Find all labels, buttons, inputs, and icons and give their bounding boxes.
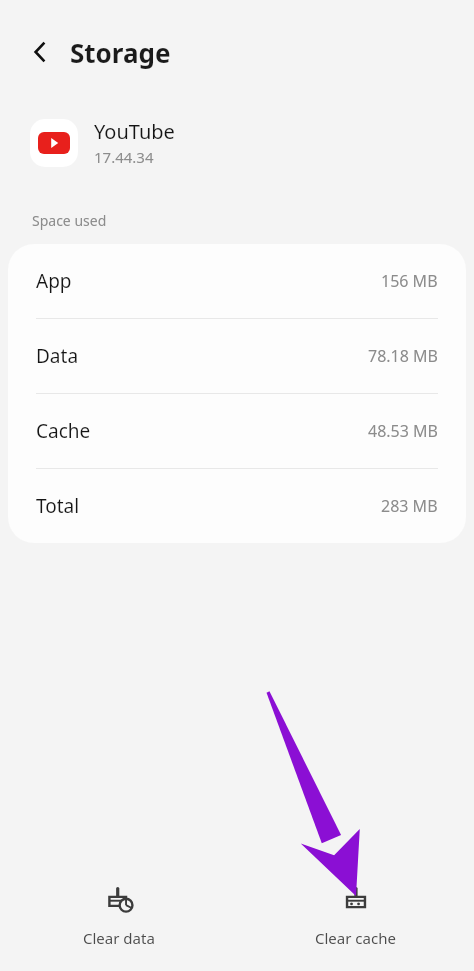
staticText: YouTube [94,118,175,145]
button[interactable]: Data [8,319,466,393]
staticText: Clear data [83,928,155,948]
staticText: Storage [70,35,171,70]
button[interactable]: Back [18,30,62,74]
staticText: Cache [36,418,91,444]
button[interactable]: Cache [8,394,466,468]
other: Clear cache [340,886,372,918]
staticText: 78.18 MB [368,345,438,367]
button[interactable]: App [8,244,466,318]
button[interactable]: Clear data [0,878,237,956]
staticText: 17.44.34 [94,147,154,167]
button[interactable]: Total [8,469,466,543]
button[interactable]: Clear cache [237,878,474,956]
staticText: 283 MB [381,495,438,517]
staticText: Clear cache [315,928,396,948]
staticText: Data [36,343,79,369]
staticText: Total [36,493,80,519]
staticText: Space used [32,211,107,230]
staticText: 156 MB [381,270,438,292]
staticText: 48.53 MB [368,420,438,442]
other: Clear data [103,886,135,918]
staticText: App [36,268,72,294]
